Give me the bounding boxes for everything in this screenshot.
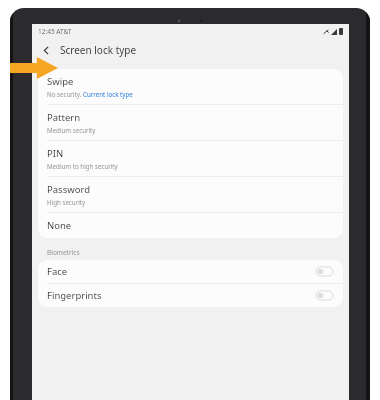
staticText: Fingerprints	[47, 289, 316, 302]
button[interactable]: Password	[38, 177, 343, 212]
button[interactable]: Face	[38, 260, 343, 283]
staticText: None	[47, 219, 72, 232]
button[interactable]: None	[38, 213, 343, 238]
staticText: Swipe	[47, 75, 74, 88]
staticText: PIN	[47, 147, 64, 160]
staticText: 12:45 AT&T	[38, 27, 72, 36]
button[interactable]: Back	[37, 41, 55, 59]
staticText: Medium to high security	[47, 162, 118, 170]
button[interactable]: PIN	[38, 141, 343, 176]
staticText: Pattern	[47, 111, 81, 124]
staticText: Medium security	[47, 126, 96, 134]
button[interactable]: Fingerprints	[38, 284, 343, 307]
staticText: High security	[47, 198, 86, 206]
staticText: No security.	[47, 90, 83, 98]
staticText: Current lock type	[83, 90, 133, 98]
staticText: Screen lock type	[60, 43, 137, 57]
button[interactable]: Pattern	[38, 105, 343, 140]
staticText: Face	[47, 265, 316, 278]
button[interactable]: Swipe	[38, 69, 343, 104]
staticText: Biometrics	[47, 248, 80, 257]
staticText: Password	[47, 183, 90, 196]
